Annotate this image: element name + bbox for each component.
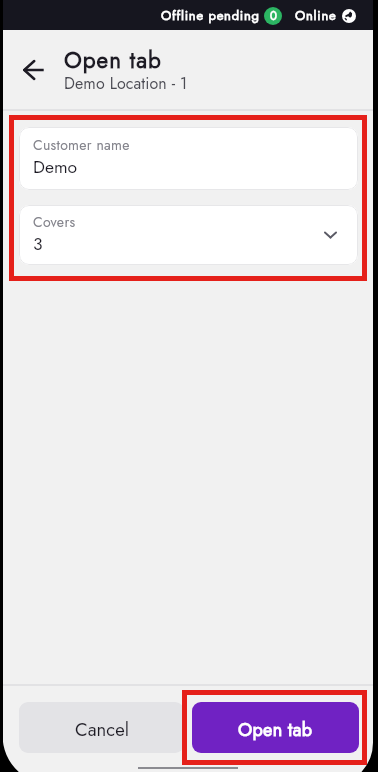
button[interactable]: Cancel: [19, 702, 184, 753]
staticText: Online: [295, 6, 337, 25]
staticText: Open tab: [64, 44, 162, 77]
button[interactable]: Back: [11, 48, 55, 92]
staticText: 0: [270, 8, 277, 25]
staticText: 3: [33, 231, 43, 256]
staticText: Cancel: [75, 716, 129, 743]
button[interactable]: Covers: [19, 205, 358, 265]
staticText: Offline pending: [161, 6, 260, 25]
staticText: Covers: [33, 212, 76, 232]
staticText: Open tab: [238, 717, 313, 743]
button[interactable]: Customer name: [19, 127, 358, 190]
staticText: Demo: [33, 154, 78, 179]
staticText: Demo Location - 1: [64, 72, 188, 95]
button[interactable]: Open tab: [192, 702, 359, 753]
staticText: Customer name: [33, 135, 130, 155]
